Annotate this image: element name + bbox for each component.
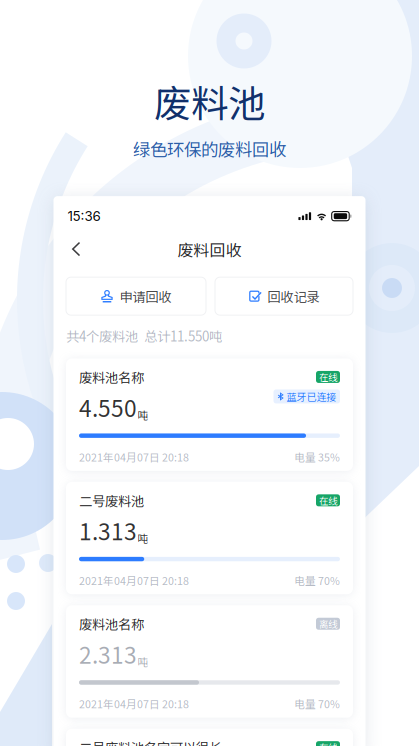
staticText: 离线: [319, 617, 337, 630]
staticText: 回收记录: [267, 286, 319, 306]
staticText: 二号废料池名字可以很长: [79, 737, 222, 746]
staticText: 废料池名称: [79, 614, 144, 633]
staticText: 吨: [137, 407, 148, 422]
staticText: 在线: [319, 370, 337, 384]
staticText: 电量 70%: [294, 696, 340, 711]
staticText: 电量 70%: [294, 572, 340, 588]
button[interactable]: 二号废料池: [66, 482, 353, 594]
staticText: 废料池名称: [79, 367, 144, 387]
staticText: 二号废料池: [79, 491, 144, 510]
staticText: 蓝牙已连接: [286, 389, 336, 404]
staticText: 吨: [137, 530, 148, 546]
staticText: 申请回收: [119, 286, 171, 306]
staticText: 15:36: [67, 208, 100, 224]
staticText: 绿色环保的废料回收: [133, 136, 286, 161]
button[interactable]: 申请回收: [66, 277, 206, 315]
staticText: 2021年04月07日 20:18: [79, 449, 189, 464]
staticText: 在线: [319, 494, 337, 507]
staticText: 电量 35%: [294, 449, 340, 464]
staticText: 共4个废料池 总计11.550吨: [66, 326, 222, 345]
staticText: 废料回收: [177, 238, 241, 261]
button[interactable]: 二号废料池名字可以很长: [66, 729, 353, 746]
staticText: 1.313: [79, 514, 137, 547]
button[interactable]: 回收记录: [215, 277, 353, 315]
staticText: 2.313: [79, 637, 137, 670]
button[interactable]: 废料池名称: [66, 358, 353, 471]
staticText: 在线: [319, 740, 337, 746]
button[interactable]: 返回: [71, 234, 101, 264]
staticText: 废料池: [154, 74, 265, 128]
button[interactable]: 废料池名称: [66, 605, 353, 718]
staticText: 吨: [137, 654, 148, 669]
staticText: 4.550: [79, 391, 137, 423]
staticText: 2021年04月07日 20:18: [79, 696, 189, 711]
staticText: 2021年04月07日 20:18: [79, 572, 189, 588]
